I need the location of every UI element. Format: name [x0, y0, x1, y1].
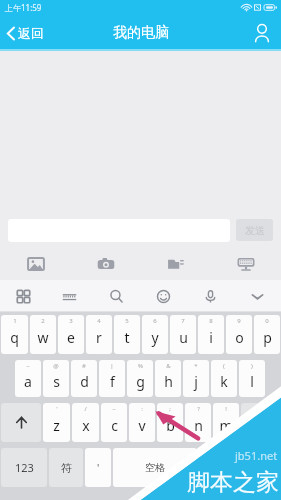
staticText: o	[235, 328, 244, 347]
button[interactable]: 8	[198, 315, 224, 354]
button[interactable]: 3	[58, 315, 84, 354]
staticText: a	[24, 372, 32, 391]
staticText: 2	[41, 317, 45, 325]
staticText: x	[82, 416, 90, 435]
button[interactable]: Hide keyboard	[234, 280, 281, 312]
button[interactable]: '	[85, 448, 111, 487]
button[interactable]: 4	[86, 315, 112, 354]
staticText: y	[151, 328, 159, 347]
staticText: v	[138, 416, 146, 435]
staticText: 123	[15, 460, 34, 475]
staticText: f	[110, 372, 115, 391]
staticText: w	[37, 328, 49, 347]
staticText: )	[251, 362, 253, 370]
button[interactable]: Profile	[243, 15, 281, 51]
button[interactable]: Take photo	[71, 248, 141, 280]
staticText: g	[136, 372, 145, 391]
button[interactable]: 0	[254, 315, 280, 354]
button[interactable]: %	[127, 360, 153, 397]
button[interactable]: Emoji	[140, 280, 187, 312]
button[interactable]: Keyboard	[46, 280, 93, 312]
button[interactable]: &	[155, 360, 181, 397]
button[interactable]: Send file	[141, 248, 211, 280]
staticText: *	[194, 362, 198, 370]
staticText: b	[166, 416, 175, 435]
staticText: &	[166, 362, 171, 370]
staticText: r	[96, 328, 102, 347]
staticText: #	[82, 362, 86, 370]
button[interactable]: ;	[157, 403, 183, 442]
button[interactable]: '	[43, 403, 70, 442]
button[interactable]: @	[43, 360, 69, 397]
staticText: 8	[209, 317, 213, 325]
button[interactable]: Remote desktop	[211, 248, 281, 280]
staticText: %	[138, 362, 143, 370]
button[interactable]: !	[213, 403, 239, 442]
staticText: e	[67, 328, 75, 347]
staticText: n	[194, 416, 203, 435]
staticText: 6	[153, 317, 157, 325]
button[interactable]: ~	[101, 403, 127, 442]
button[interactable]: :	[129, 403, 155, 442]
staticText: c	[111, 416, 118, 435]
staticText: ;	[169, 405, 171, 413]
button[interactable]: 返回	[0, 15, 56, 51]
button[interactable]: /	[72, 403, 99, 442]
staticText: 4	[97, 317, 101, 325]
staticText: 5	[125, 317, 129, 325]
button[interactable]: (	[211, 360, 237, 397]
staticText: (	[223, 362, 225, 370]
button[interactable]: 1	[1, 315, 28, 354]
button[interactable]: Voice input	[187, 280, 234, 312]
staticText: 发送	[245, 224, 265, 237]
staticText: 0	[265, 317, 269, 325]
staticText: 我的电脑	[113, 24, 169, 42]
button[interactable]: |	[99, 360, 125, 397]
staticText: 7	[181, 317, 185, 325]
staticText: 1	[13, 317, 17, 325]
staticText: q	[10, 328, 19, 347]
button[interactable]: 空格	[113, 448, 197, 487]
button[interactable]: 发送	[236, 219, 273, 241]
staticText: d	[80, 372, 89, 391]
staticText: h	[164, 372, 173, 391]
staticText: t	[124, 328, 130, 347]
staticText: @	[53, 362, 59, 370]
button[interactable]: )	[239, 360, 265, 397]
staticText: k	[220, 372, 228, 391]
button[interactable]: *	[183, 360, 209, 397]
staticText: z	[53, 416, 60, 435]
staticText: p	[263, 328, 272, 347]
staticText: i	[209, 328, 213, 347]
button[interactable]: Search	[93, 280, 140, 312]
button[interactable]: Apps	[0, 280, 46, 312]
button[interactable]: Backspace	[241, 403, 280, 442]
staticText: !	[225, 405, 227, 413]
button[interactable]	[235, 448, 280, 487]
button[interactable]: 5	[114, 315, 140, 354]
staticText: 9	[237, 317, 241, 325]
button[interactable]: #	[71, 360, 97, 397]
staticText: j	[194, 372, 198, 391]
staticText: s	[53, 372, 60, 391]
staticText: 符	[61, 461, 72, 475]
staticText: 上午11:59	[5, 2, 42, 13]
staticText: 脚本之家	[187, 468, 279, 497]
button[interactable]: ~	[15, 360, 41, 397]
button[interactable]: Shift	[1, 403, 41, 442]
staticText: |	[110, 362, 114, 370]
staticText: /	[84, 405, 87, 413]
button[interactable]: 123	[1, 448, 47, 487]
button[interactable]: 符	[49, 448, 83, 487]
staticText: m	[219, 416, 233, 435]
button[interactable]: 9	[226, 315, 252, 354]
staticText: 3	[69, 317, 73, 325]
button[interactable]: 7	[170, 315, 196, 354]
button[interactable]	[199, 448, 233, 487]
button[interactable]: ?	[185, 403, 211, 442]
button[interactable]: 6	[142, 315, 168, 354]
button[interactable]: 2	[30, 315, 56, 354]
staticText: u	[179, 328, 188, 347]
button[interactable]: Send image	[0, 248, 71, 280]
